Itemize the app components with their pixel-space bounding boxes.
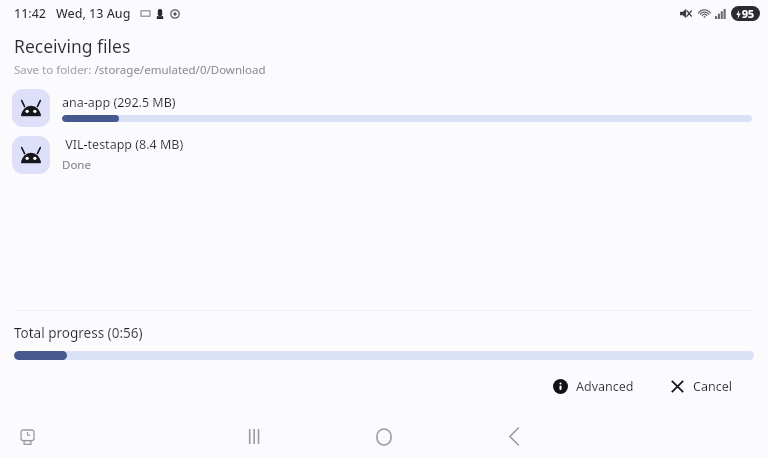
button[interactable]: ana-app (292.5 MB) xyxy=(0,84,768,131)
button[interactable]: VIL-testapp (8.4 MB) xyxy=(0,131,768,178)
button[interactable]: Home xyxy=(362,415,406,458)
button[interactable]: Cancel xyxy=(664,372,738,401)
staticText: Receiving files xyxy=(14,34,131,58)
staticText: Advanced xyxy=(576,378,634,395)
button[interactable]: Back xyxy=(492,415,536,458)
staticText: Save to folder: /storage/emulated/0/Down… xyxy=(14,62,266,78)
button[interactable]: Recents xyxy=(232,415,276,458)
staticText: 11:42 xyxy=(14,5,47,22)
staticText: Done xyxy=(62,157,91,173)
staticText: ana-app (292.5 MB) xyxy=(62,94,176,111)
button[interactable]: Advanced xyxy=(547,372,640,401)
staticText: Cancel xyxy=(693,378,732,395)
button[interactable]: Show keyboard xyxy=(12,422,42,452)
staticText: Total progress (0:56) xyxy=(14,324,143,342)
staticText: Wed, 13 Aug xyxy=(56,5,131,22)
staticText: 95 xyxy=(742,7,755,21)
staticText: VIL-testapp (8.4 MB) xyxy=(62,136,184,153)
